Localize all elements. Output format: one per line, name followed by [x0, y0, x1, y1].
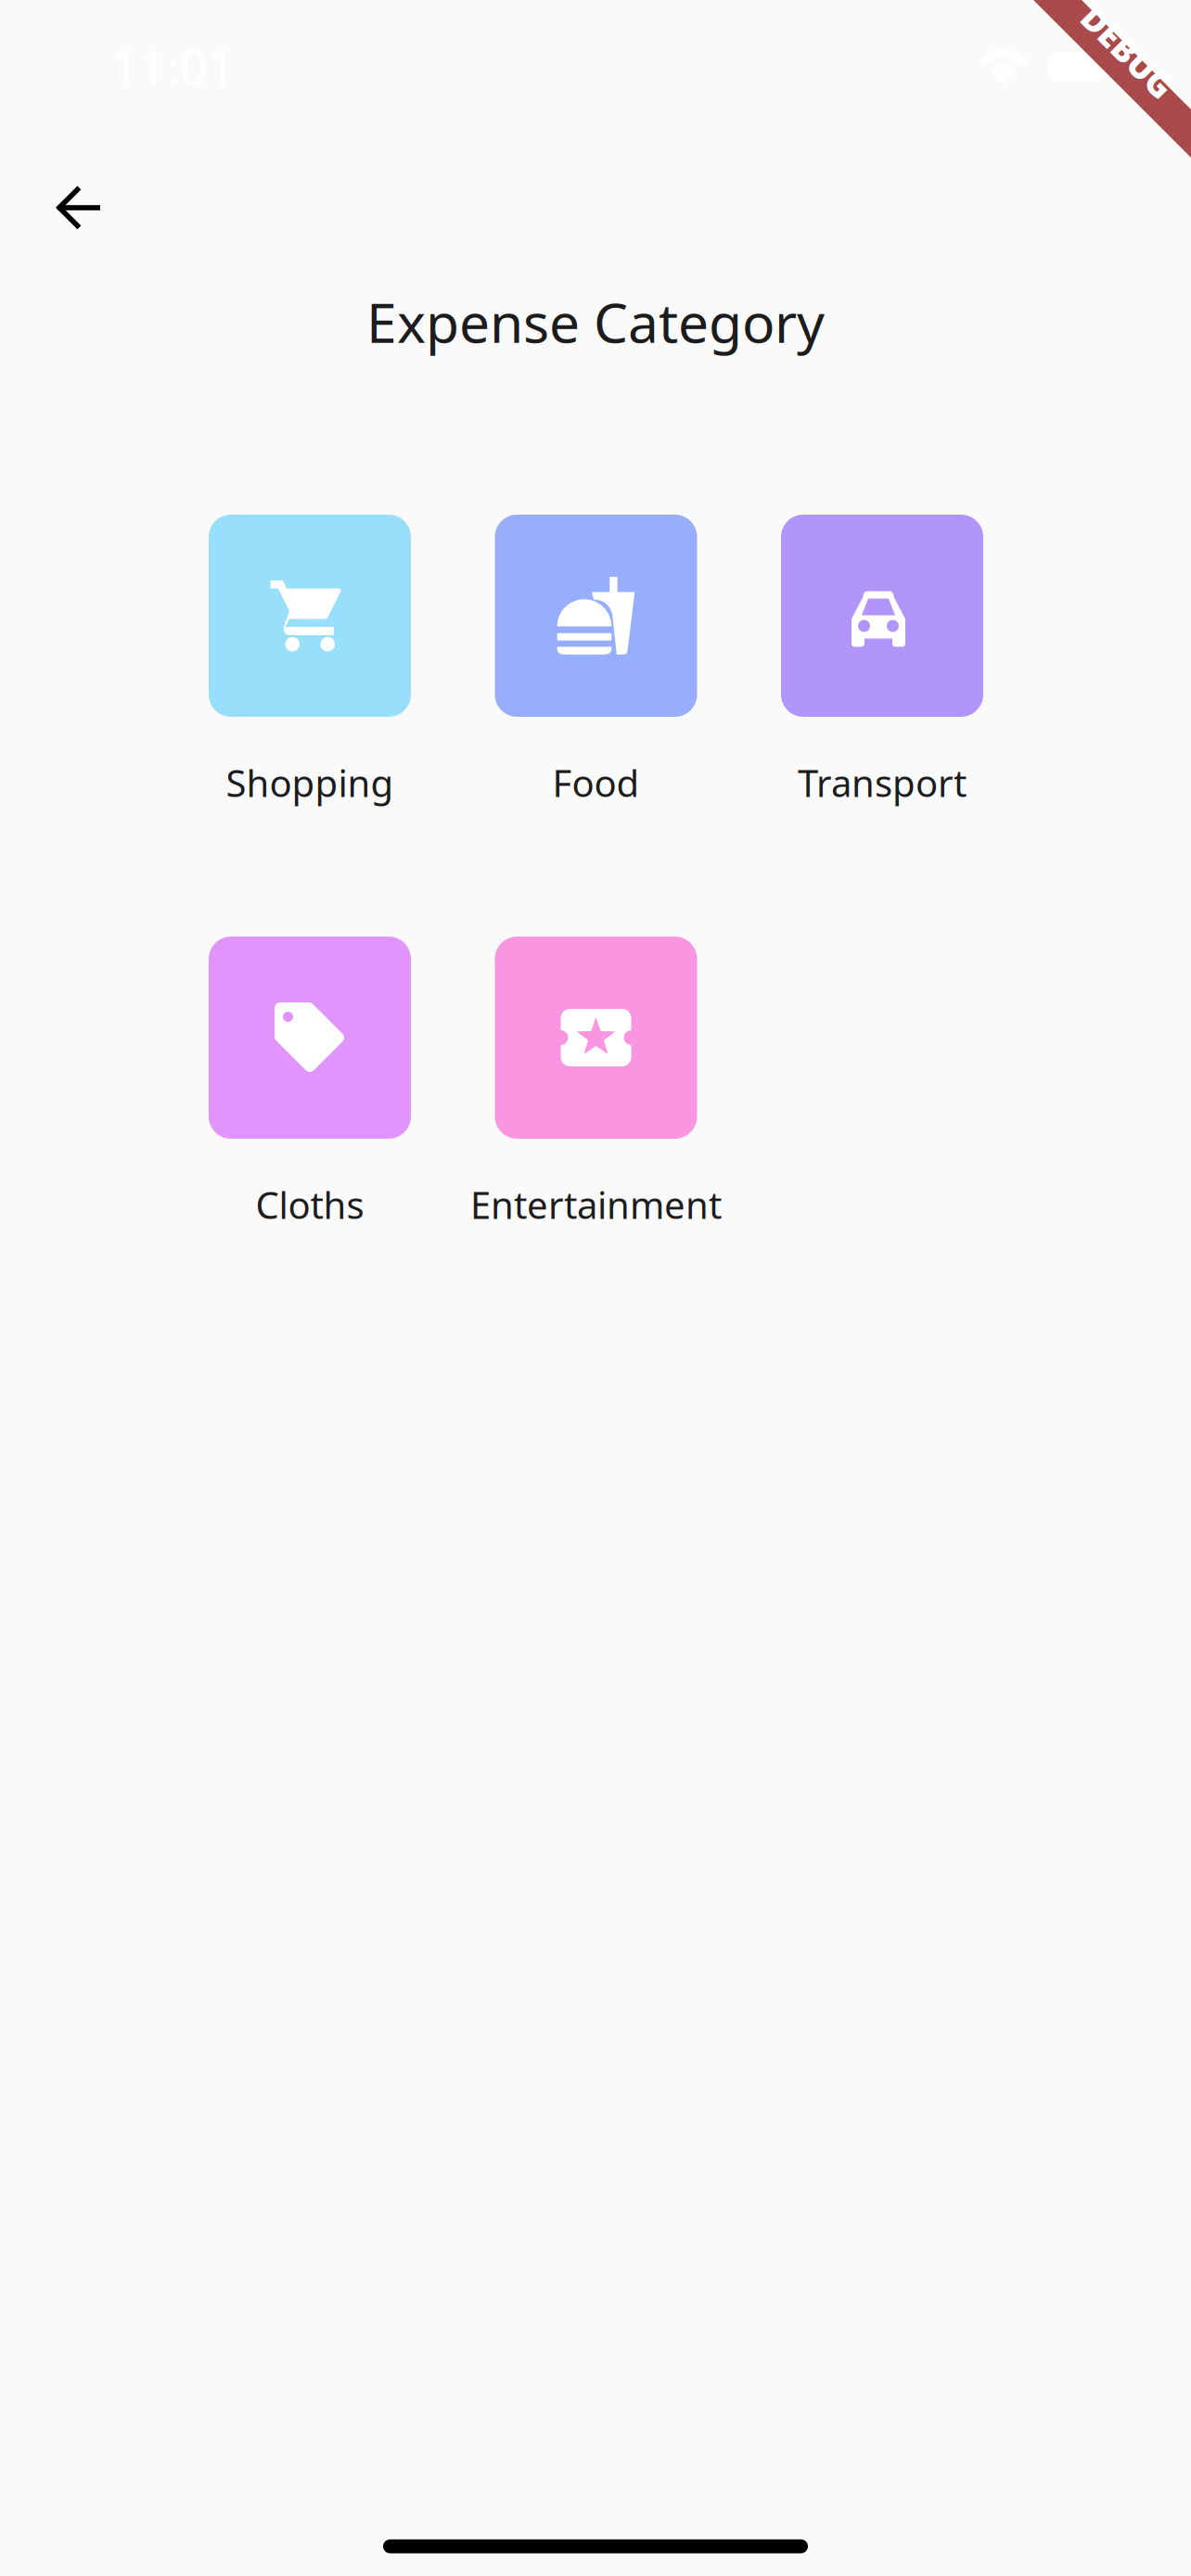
button[interactable]: Food — [495, 515, 697, 804]
staticText: DEBUG — [1070, 30, 1185, 74]
staticText: Expense Category — [366, 286, 825, 358]
button[interactable]: Shopping — [209, 515, 411, 804]
button[interactable]: Cloths — [209, 937, 411, 1226]
staticText: Entertainment — [470, 1180, 722, 1229]
staticText: Shopping — [226, 758, 394, 807]
staticText: Food — [552, 758, 640, 807]
button[interactable]: Back — [28, 158, 128, 258]
button[interactable]: Entertainment — [495, 937, 697, 1226]
staticText: Transport — [798, 758, 967, 807]
staticText: Cloths — [256, 1180, 364, 1229]
button[interactable]: Transport — [781, 515, 983, 804]
